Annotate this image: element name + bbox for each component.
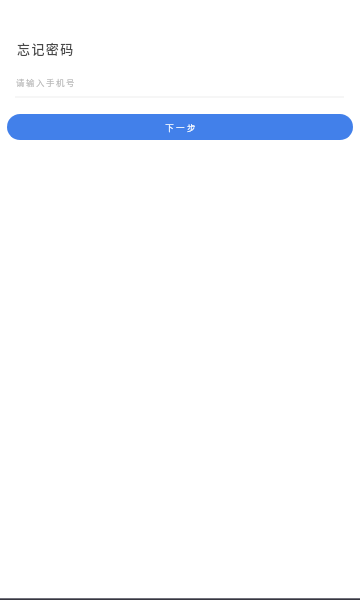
staticText: 请输入手机号 — [16, 76, 77, 88]
button[interactable]: 下一步 — [7, 114, 353, 140]
staticText: 忘记密码 — [17, 39, 75, 58]
button[interactable]: 请输入手机号 — [0, 70, 360, 98]
staticText: 下一步 — [165, 121, 198, 133]
